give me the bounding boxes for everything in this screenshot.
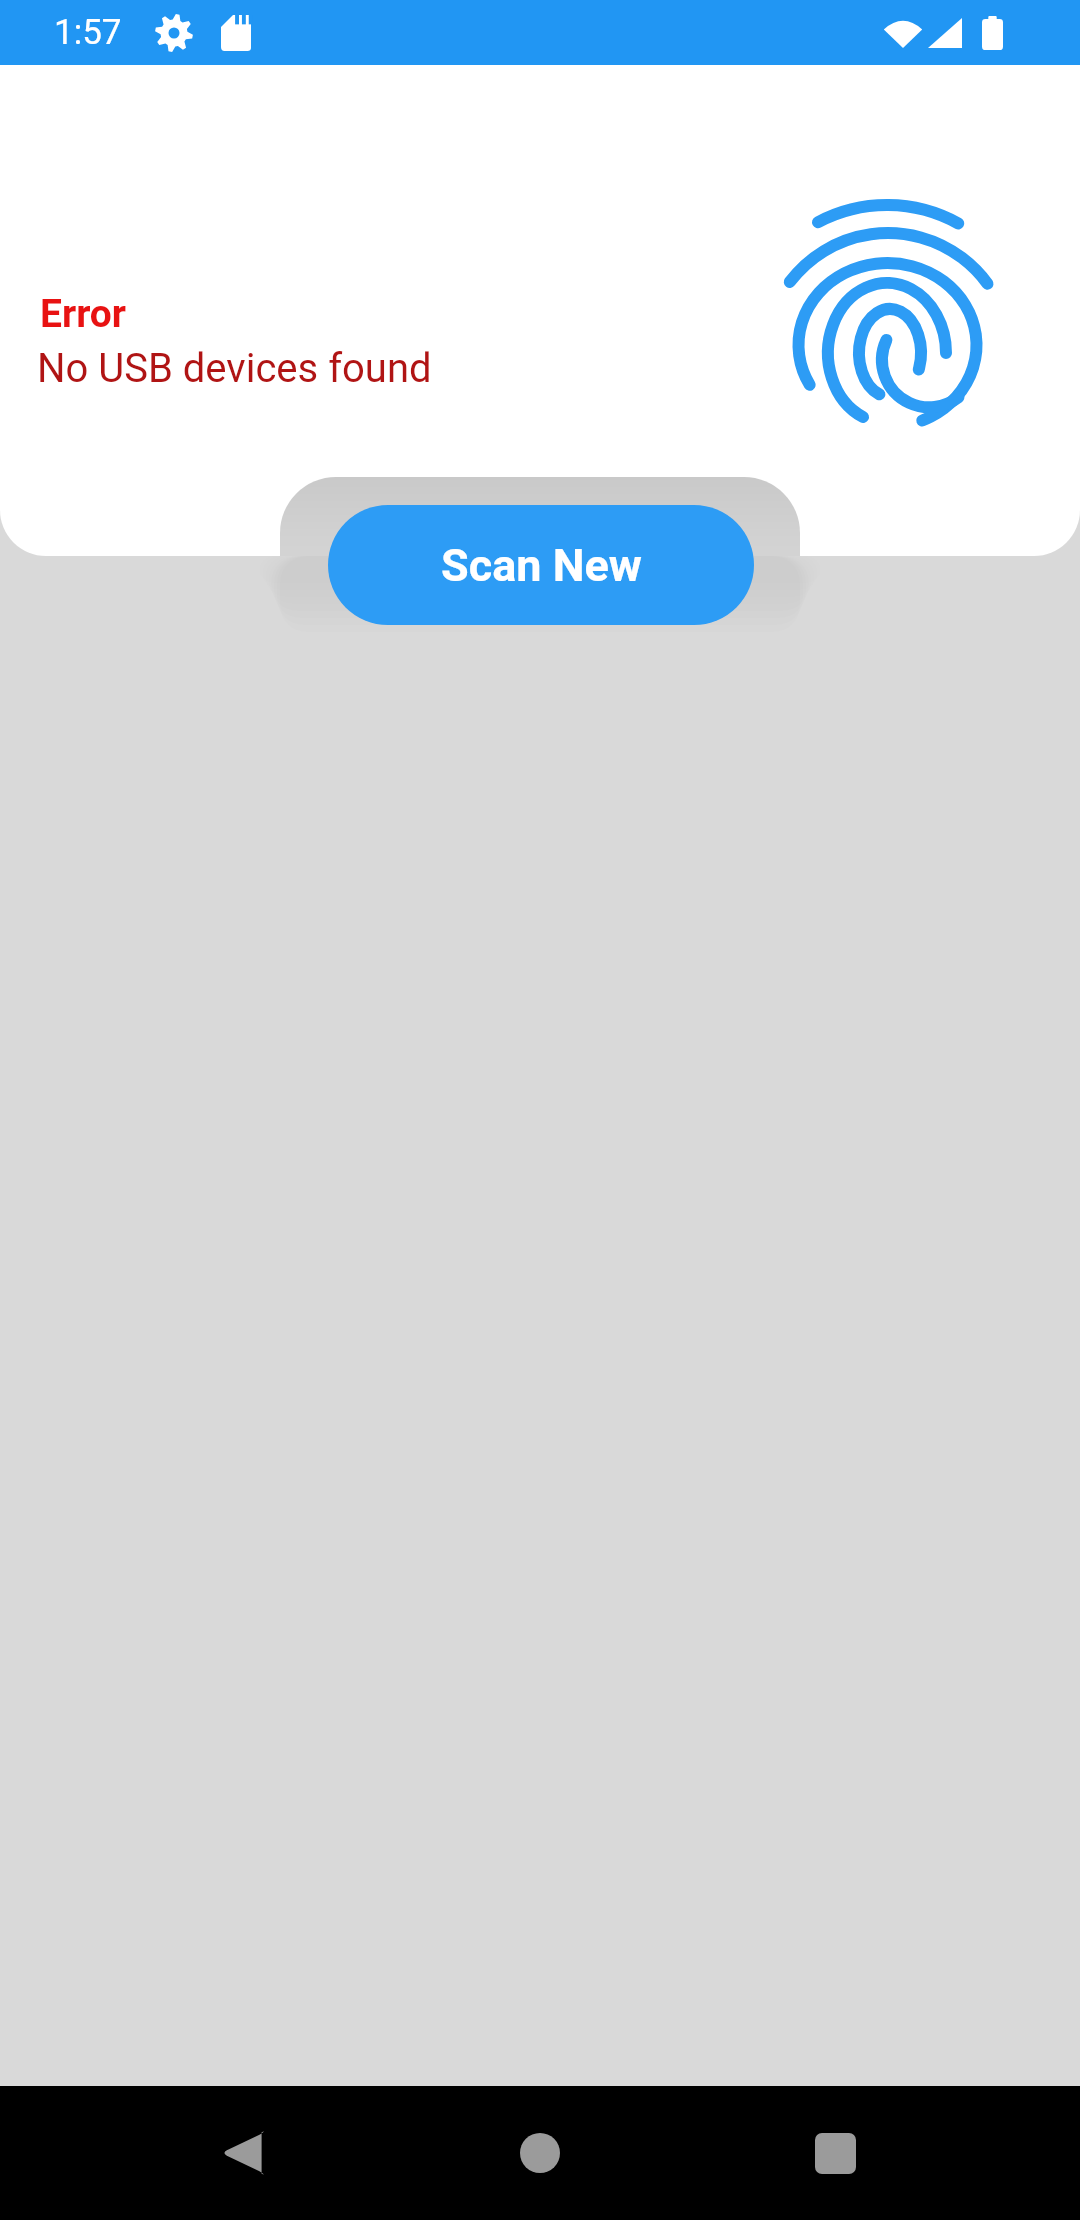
staticText: Scan New [441,539,642,592]
button[interactable]: Recent apps [760,2086,910,2220]
staticText: 1:57 [54,12,122,53]
staticText: No USB devices found [37,345,432,392]
button[interactable]: Scan New [328,505,754,625]
staticText: Error [40,291,127,337]
button[interactable]: Home [465,2086,615,2220]
button[interactable]: Back [169,2086,319,2220]
